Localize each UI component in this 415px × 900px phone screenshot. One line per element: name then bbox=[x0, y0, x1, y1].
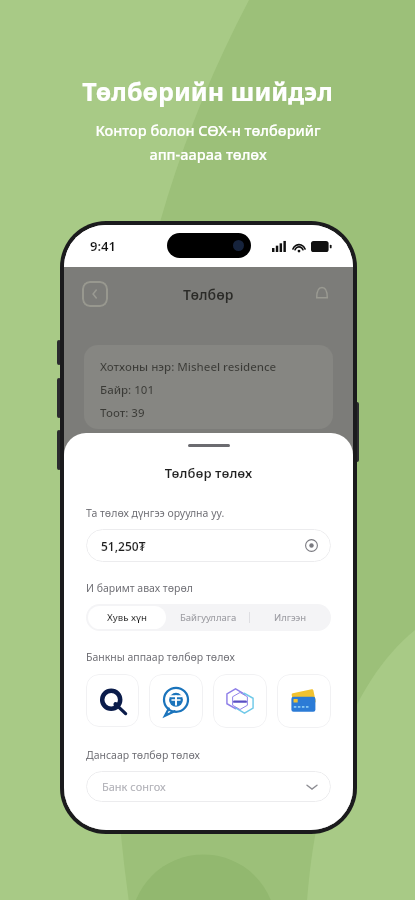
button[interactable]: Илгээн bbox=[250, 604, 331, 631]
staticText: Төлбөр bbox=[183, 285, 234, 304]
staticText: Та төлөх дүнгээ оруулна уу. bbox=[86, 506, 225, 520]
button[interactable]: Clear bbox=[305, 539, 318, 552]
staticText: Тоот: 39 bbox=[100, 405, 145, 421]
button[interactable]: Khan bank bbox=[149, 674, 203, 728]
staticText: Төлбөр төлөх bbox=[64, 464, 353, 482]
staticText: 51,250₮ bbox=[101, 538, 146, 554]
staticText: Банк сонгох bbox=[102, 779, 166, 794]
staticText: Дансаар төлбөр төлөх bbox=[86, 748, 200, 762]
button[interactable]: 51,250₮ bbox=[86, 529, 331, 562]
staticText: Хотхоны нэр: Misheel residence bbox=[100, 359, 277, 375]
staticText: Байр: 101 bbox=[100, 382, 154, 398]
button[interactable]: Back bbox=[82, 281, 108, 307]
staticText: Банкны аппаар төлбөр төлөх bbox=[86, 650, 235, 664]
staticText: Контор болон СӨХ-н төлбөрийг bbox=[95, 120, 321, 140]
button[interactable]: Monpay bbox=[213, 674, 267, 728]
button[interactable]: Хувь хүн bbox=[88, 606, 166, 629]
staticText: апп-аараа төлөх bbox=[149, 144, 267, 164]
staticText: Байгууллага bbox=[180, 611, 237, 624]
staticText: Хувь хүн bbox=[107, 611, 147, 624]
button[interactable]: Байгууллага bbox=[168, 604, 249, 631]
staticText: Илгээн bbox=[274, 611, 307, 624]
button[interactable]: Qpay bbox=[86, 674, 139, 727]
button[interactable]: Банк сонгох bbox=[86, 771, 331, 802]
staticText: Төлбөрийн шийдэл bbox=[82, 74, 333, 108]
staticText: 9:41 bbox=[90, 237, 116, 255]
button[interactable]: Notifications bbox=[309, 281, 335, 307]
staticText: И баримт авах төрөл bbox=[86, 581, 193, 595]
button[interactable]: Card bbox=[277, 674, 331, 728]
